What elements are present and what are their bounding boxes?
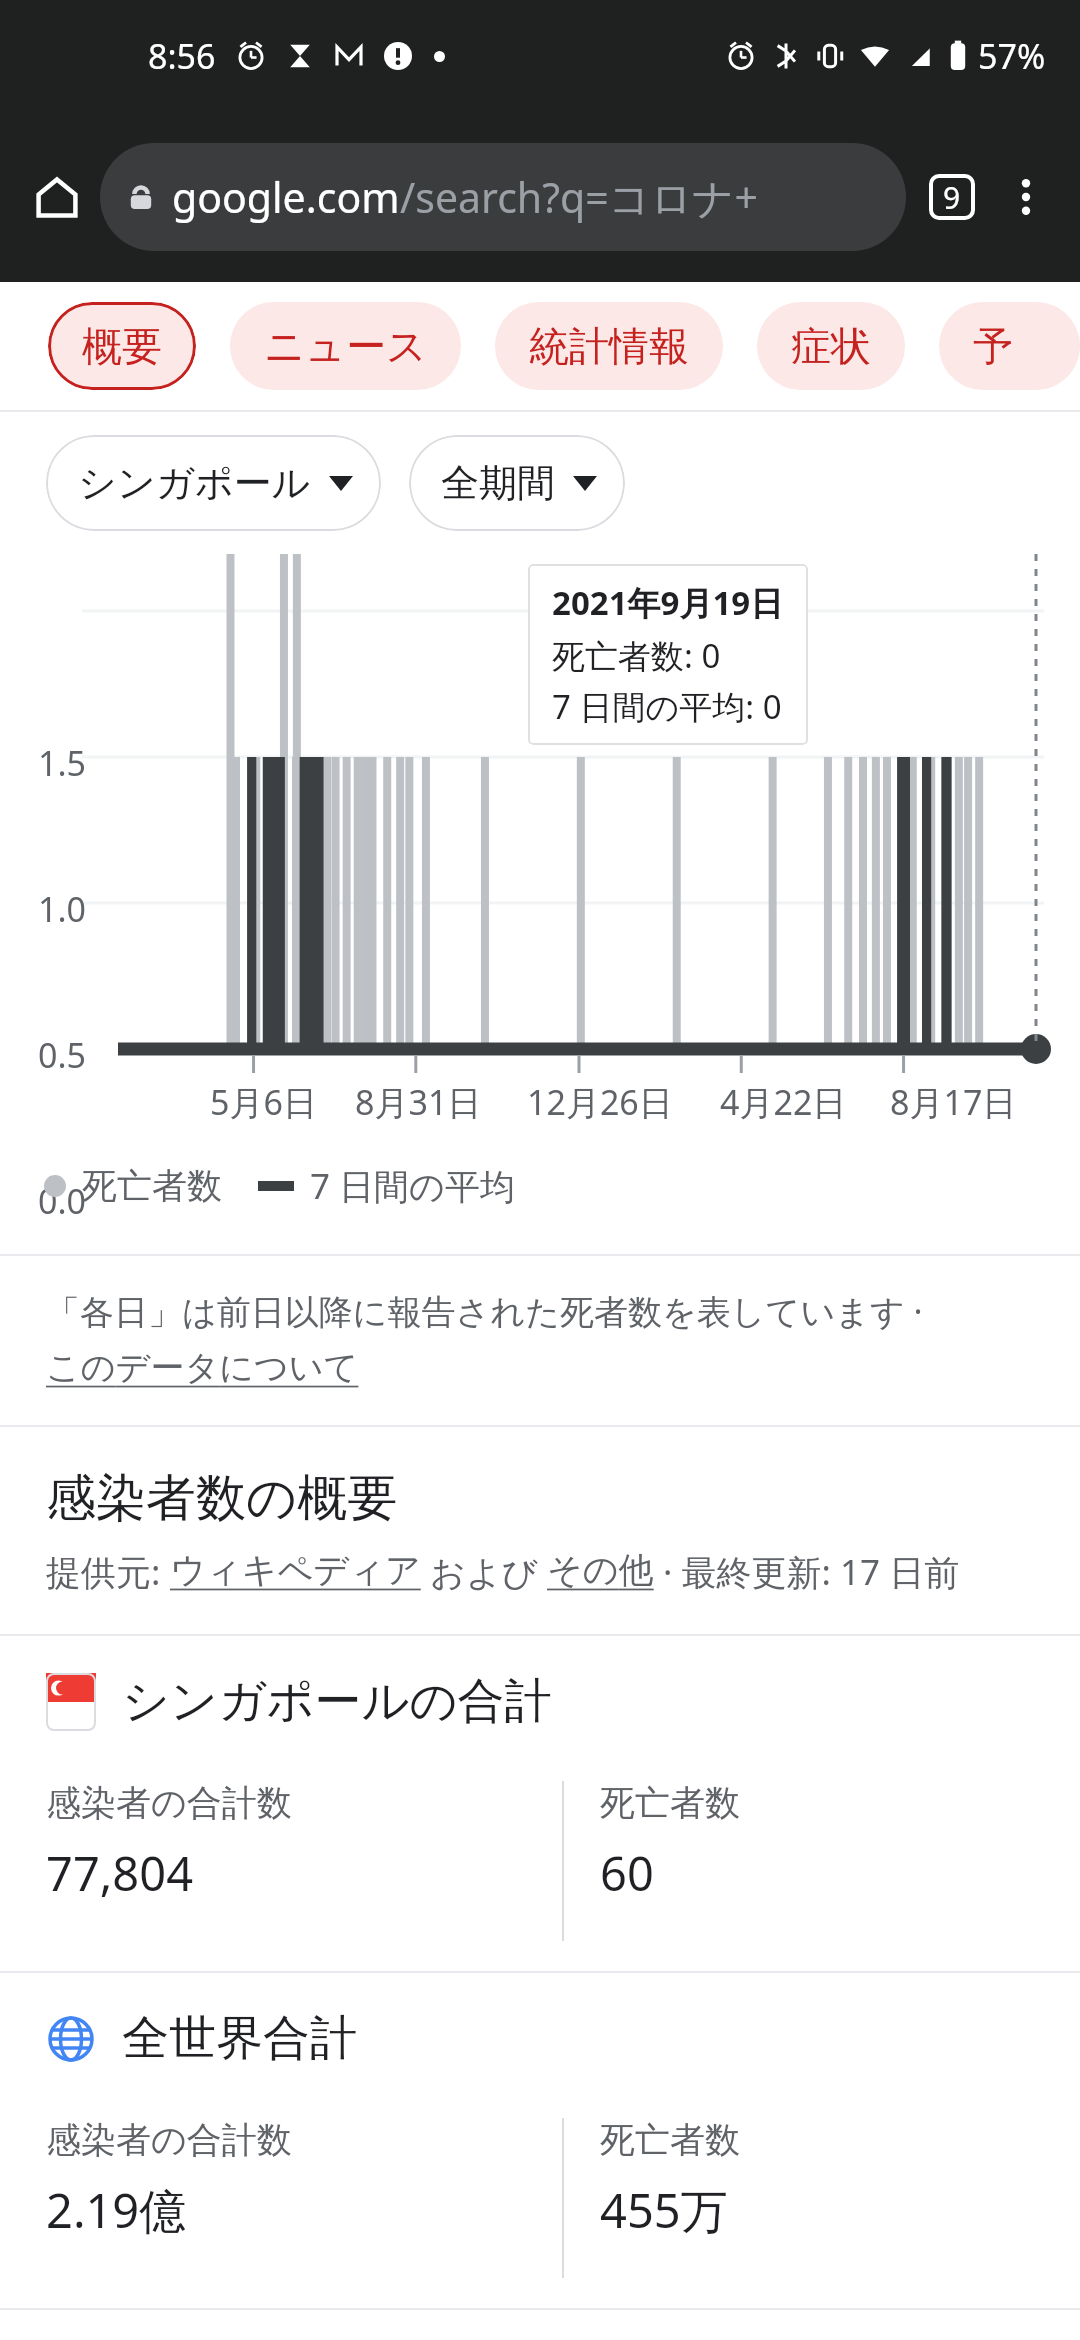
staticText: 感染者数の概要	[46, 1467, 398, 1530]
staticText: 全世界合計	[122, 2009, 357, 2068]
staticText: 死亡者数	[600, 1781, 740, 1825]
staticText: · 最終更新: 17 日前	[654, 1548, 960, 1596]
staticText: 2021年9月19日	[552, 580, 784, 625]
staticText: 5月6日	[210, 1079, 317, 1125]
staticText: シンガポールの合計	[122, 1672, 552, 1731]
staticText: 0.5	[38, 1032, 87, 1078]
staticText: ニュース	[264, 321, 427, 371]
button[interactable]: 全期間	[409, 435, 625, 531]
button[interactable]: シンガポール	[46, 435, 381, 531]
button[interactable]: 症状	[757, 302, 905, 390]
staticText: 「各日」は前日以降に報告された死者数を表しています ·	[46, 1288, 923, 1334]
staticText: 8:56	[148, 33, 216, 79]
staticText: google.com	[172, 169, 400, 225]
staticText: 1.0	[38, 886, 87, 932]
staticText: 死亡者数	[600, 2118, 740, 2162]
staticText: 2.19億	[46, 2178, 187, 2242]
staticText: 9	[943, 177, 961, 218]
button[interactable]: ウィキペディア	[170, 1548, 421, 1592]
staticText: 概要	[82, 321, 162, 371]
staticText: その他	[547, 1548, 654, 1592]
button[interactable]: このデータについて	[46, 1346, 359, 1389]
staticText: 死亡者数	[82, 1164, 222, 1208]
staticText: 予防	[973, 321, 1046, 371]
staticText: 77,804	[46, 1841, 194, 1905]
staticText: 7 日間の平均: 0	[552, 684, 782, 729]
button[interactable]: 概要	[48, 302, 196, 390]
staticText: 提供元:	[46, 1548, 170, 1596]
staticText: および	[421, 1548, 547, 1596]
button[interactable]: 予防	[939, 302, 1080, 390]
button[interactable]: Home	[18, 158, 96, 236]
button[interactable]: その他	[547, 1548, 654, 1592]
staticText: 57%	[978, 33, 1046, 79]
button[interactable]: Tabs	[914, 159, 990, 235]
staticText: 1.5	[38, 740, 87, 786]
button[interactable]: google.com	[100, 143, 906, 251]
button[interactable]: More options	[990, 161, 1062, 233]
staticText: 4月22日	[720, 1079, 847, 1125]
staticText: 8月31日	[355, 1079, 482, 1125]
staticText: 7 日間の平均	[310, 1162, 515, 1210]
staticText: 0.0	[38, 1178, 87, 1224]
button[interactable]: ニュース	[230, 302, 461, 390]
staticText: 死亡者数: 0	[552, 633, 721, 678]
staticText: 症状	[791, 321, 871, 371]
staticText: 統計情報	[529, 321, 689, 371]
button[interactable]: 統計情報	[495, 302, 723, 390]
staticText: 全期間	[441, 459, 555, 507]
staticText: 12月26日	[527, 1079, 673, 1125]
staticText: /search?q=コロナ+	[400, 169, 758, 225]
staticText: 60	[600, 1841, 654, 1905]
staticText: 感染者の合計数	[46, 1781, 292, 1825]
staticText: シンガポール	[78, 459, 311, 507]
staticText: ウィキペディア	[170, 1548, 421, 1592]
staticText: 455万	[600, 2178, 728, 2242]
staticText: 8月17日	[890, 1079, 1017, 1125]
staticText: このデータについて	[46, 1346, 359, 1389]
staticText: 感染者の合計数	[46, 2118, 292, 2162]
